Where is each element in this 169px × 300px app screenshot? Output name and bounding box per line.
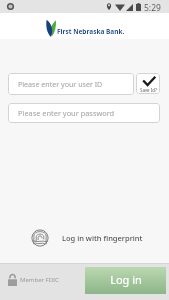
button[interactable]: Please enter your user ID xyxy=(8,73,134,95)
button[interactable]: Please enter your password xyxy=(8,103,160,123)
button[interactable]: Log in xyxy=(85,267,166,294)
staticText: Log in with fingerprint xyxy=(62,233,143,243)
button[interactable]: Log in with fingerprint xyxy=(31,229,143,247)
staticText: Please enter your user ID xyxy=(18,79,103,89)
staticText: Member FDIC xyxy=(20,276,59,284)
staticText: 5:29 xyxy=(144,2,161,14)
staticText: Save Id? xyxy=(140,87,157,93)
button[interactable]: Member FDIC xyxy=(8,274,59,286)
staticText: Log in xyxy=(110,272,142,287)
staticText: First Nebraska Bank. xyxy=(57,27,125,36)
button[interactable]: Save Id xyxy=(136,73,160,94)
staticText: Please enter your password xyxy=(18,108,115,118)
